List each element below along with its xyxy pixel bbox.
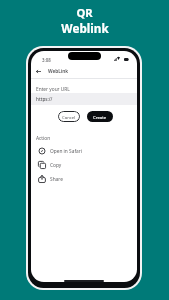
staticText: Action — [36, 135, 51, 142]
button[interactable]: Create — [87, 111, 113, 122]
staticText: Share — [50, 176, 63, 183]
button[interactable]: Copy — [31, 158, 137, 172]
button[interactable]: Open in Safari — [31, 144, 137, 158]
staticText: Open in Safari — [50, 148, 82, 155]
staticText: https:// — [36, 96, 53, 102]
button[interactable]: Back — [35, 68, 42, 75]
button[interactable]: Share — [31, 172, 137, 186]
staticText: WebLink — [48, 68, 69, 75]
staticText: Weblink — [61, 20, 109, 36]
staticText: Copy — [50, 162, 62, 169]
staticText: Enter your URL — [36, 86, 70, 93]
staticText: QR — [76, 5, 93, 20]
staticText: 3:08 — [42, 57, 51, 63]
button[interactable]: Cancel — [58, 111, 80, 122]
staticText: Create — [93, 114, 107, 120]
staticText: Cancel — [62, 114, 76, 120]
